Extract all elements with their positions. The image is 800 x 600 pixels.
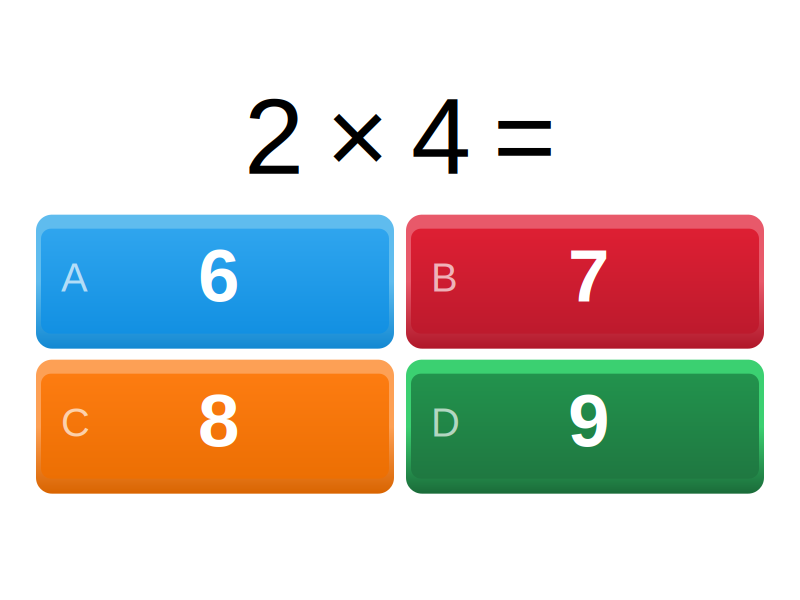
staticText: 9 (568, 379, 610, 462)
staticText: C (61, 400, 90, 445)
staticText: 2 × 4 = (244, 76, 556, 197)
button[interactable]: A (36, 215, 394, 349)
staticText: B (431, 255, 458, 300)
staticText: 8 (198, 379, 240, 462)
staticText: D (431, 400, 460, 445)
staticText: 6 (198, 234, 240, 317)
staticText: A (61, 255, 88, 300)
button[interactable]: B (406, 215, 764, 349)
staticText: 7 (568, 234, 610, 317)
button[interactable]: D (406, 360, 764, 494)
button[interactable]: C (36, 360, 394, 494)
